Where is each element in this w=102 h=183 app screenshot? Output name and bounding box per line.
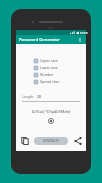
button[interactable]: Copy: [19, 135, 30, 146]
button[interactable]: Number: [34, 71, 54, 78]
staticText: Special char: [40, 79, 60, 84]
staticText: 20: [37, 94, 42, 99]
button[interactable]: Regenerate: [47, 117, 55, 125]
staticText: Length:: [22, 94, 35, 99]
button[interactable]: Special char: [34, 78, 60, 85]
staticText: GENERATE: [43, 139, 59, 143]
button[interactable]: Lower case: [34, 64, 58, 71]
button[interactable]: Share: [72, 135, 83, 146]
button[interactable]: More options: [76, 36, 83, 43]
staticText: &/(Gu4,*O5pAIrEMzkd: [16, 109, 86, 114]
button[interactable]: Upper case: [34, 57, 58, 64]
staticText: Lower case: [40, 65, 58, 70]
staticText: Number: [40, 72, 54, 77]
staticText: Password Generator: [19, 37, 76, 43]
button[interactable]: GENERATE: [34, 137, 68, 145]
staticText: Upper case: [40, 58, 58, 63]
